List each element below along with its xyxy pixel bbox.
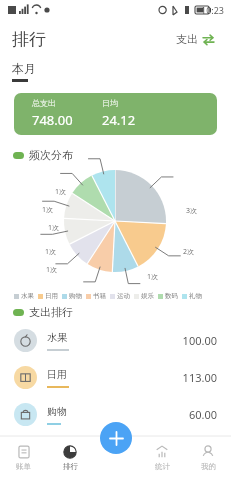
button[interactable]: 排行 — [47, 436, 93, 480]
staticText: 1次 — [55, 187, 67, 197]
staticText: 本月 — [12, 61, 36, 76]
staticText: 排行 — [63, 462, 78, 471]
staticText: 支出排行 — [29, 305, 73, 319]
staticText: 统计 — [155, 462, 170, 471]
staticText: 100.00 — [182, 333, 217, 348]
button[interactable]: 总支出 — [14, 93, 217, 135]
button[interactable]: 我的 — [185, 436, 231, 480]
staticText: 支出 — [176, 32, 198, 46]
staticText: 水果 — [21, 292, 34, 300]
button[interactable]: 日用 — [0, 359, 231, 396]
staticText: 3次 — [186, 206, 198, 216]
staticText: 2次 — [183, 247, 195, 257]
staticText: 1次 — [147, 272, 159, 282]
staticText: 总支出 — [32, 98, 56, 108]
button[interactable]: 账单 — [0, 436, 47, 480]
staticText: 日用 — [45, 292, 58, 300]
staticText: 账单 — [16, 462, 31, 471]
staticText: 我的 — [201, 462, 216, 471]
staticText: 748.00 — [32, 111, 73, 129]
button[interactable]: 统计 — [139, 436, 185, 480]
staticText: 书籍 — [93, 292, 106, 300]
staticText: 排行 — [12, 29, 46, 50]
staticText: 150.00 — [182, 444, 217, 459]
button[interactable]: 本月 — [12, 58, 36, 85]
staticText: 水果 — [47, 331, 67, 344]
button[interactable]: 书籍 — [0, 433, 231, 470]
staticText: 日用 — [47, 368, 67, 381]
staticText: 数码 — [165, 292, 178, 300]
staticText: 购物 — [47, 405, 67, 418]
staticText: 10:23 — [201, 4, 225, 16]
button[interactable]: Add record — [100, 422, 132, 454]
staticText: 运动 — [117, 292, 130, 300]
staticText: 娱乐 — [141, 292, 154, 300]
staticText: 1次 — [42, 205, 54, 215]
button[interactable]: 支出 — [172, 28, 219, 50]
button[interactable]: 水果 — [0, 322, 231, 359]
staticText: 1次 — [48, 223, 60, 233]
staticText: 60.00 — [188, 407, 217, 422]
staticText: 113.00 — [182, 370, 217, 385]
staticText: 书籍 — [47, 442, 67, 455]
staticText: 日均 — [102, 98, 118, 108]
button[interactable]: 购物 — [0, 396, 231, 433]
staticText: 1次 — [46, 265, 58, 275]
staticText: 24.12 — [102, 111, 136, 129]
staticText: 购物 — [69, 292, 82, 300]
staticText: 频次分布 — [29, 148, 73, 162]
staticText: 礼物 — [189, 292, 202, 300]
staticText: 1次 — [45, 247, 57, 257]
